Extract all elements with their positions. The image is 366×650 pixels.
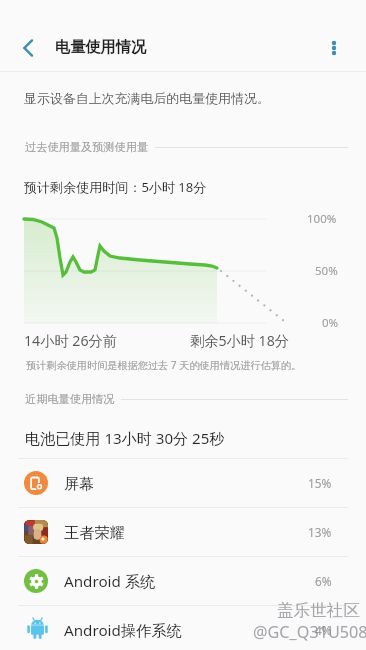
- staticText: Android 系统: [64, 571, 156, 592]
- staticText: 0%: [322, 315, 339, 331]
- button[interactable]: Back: [8, 28, 48, 68]
- staticText: 过去使用量及预测使用量: [25, 140, 149, 154]
- staticText: 近期电量使用情况: [25, 392, 115, 406]
- staticText: 4%: [315, 622, 332, 638]
- staticText: 13%: [308, 524, 332, 540]
- staticText: @GC_Q31U508: [253, 621, 366, 643]
- staticText: 15%: [308, 475, 332, 491]
- staticText: 显示设备自上次充满电后的电量使用情况。: [24, 91, 270, 107]
- staticText: 屏幕: [64, 474, 95, 493]
- button[interactable]: Android 系统: [0, 557, 366, 605]
- staticText: 预计剩余使用时间：5小时 18分: [24, 178, 207, 196]
- staticText: 6%: [315, 573, 332, 589]
- staticText: 100%: [307, 211, 337, 227]
- staticText: 14小时 26分前: [24, 331, 117, 350]
- staticText: 50%: [315, 263, 338, 279]
- staticText: 王者荣耀: [64, 523, 125, 542]
- staticText: 电池已使用 13小时 30分 25秒: [25, 428, 225, 449]
- staticText: 剩余5小时 18分: [190, 331, 289, 350]
- button[interactable]: 屏幕: [0, 459, 366, 507]
- staticText: 预计剩余使用时间是根据您过去 7 天的使用情况进行估算的。: [26, 358, 302, 372]
- staticText: 电量使用情况: [55, 37, 147, 56]
- button[interactable]: 王者荣耀: [0, 508, 366, 556]
- staticText: Android操作系统: [64, 620, 182, 641]
- button[interactable]: Android操作系统: [0, 606, 366, 650]
- button[interactable]: More options: [314, 28, 354, 68]
- staticText: 盖乐世社区: [277, 600, 360, 621]
